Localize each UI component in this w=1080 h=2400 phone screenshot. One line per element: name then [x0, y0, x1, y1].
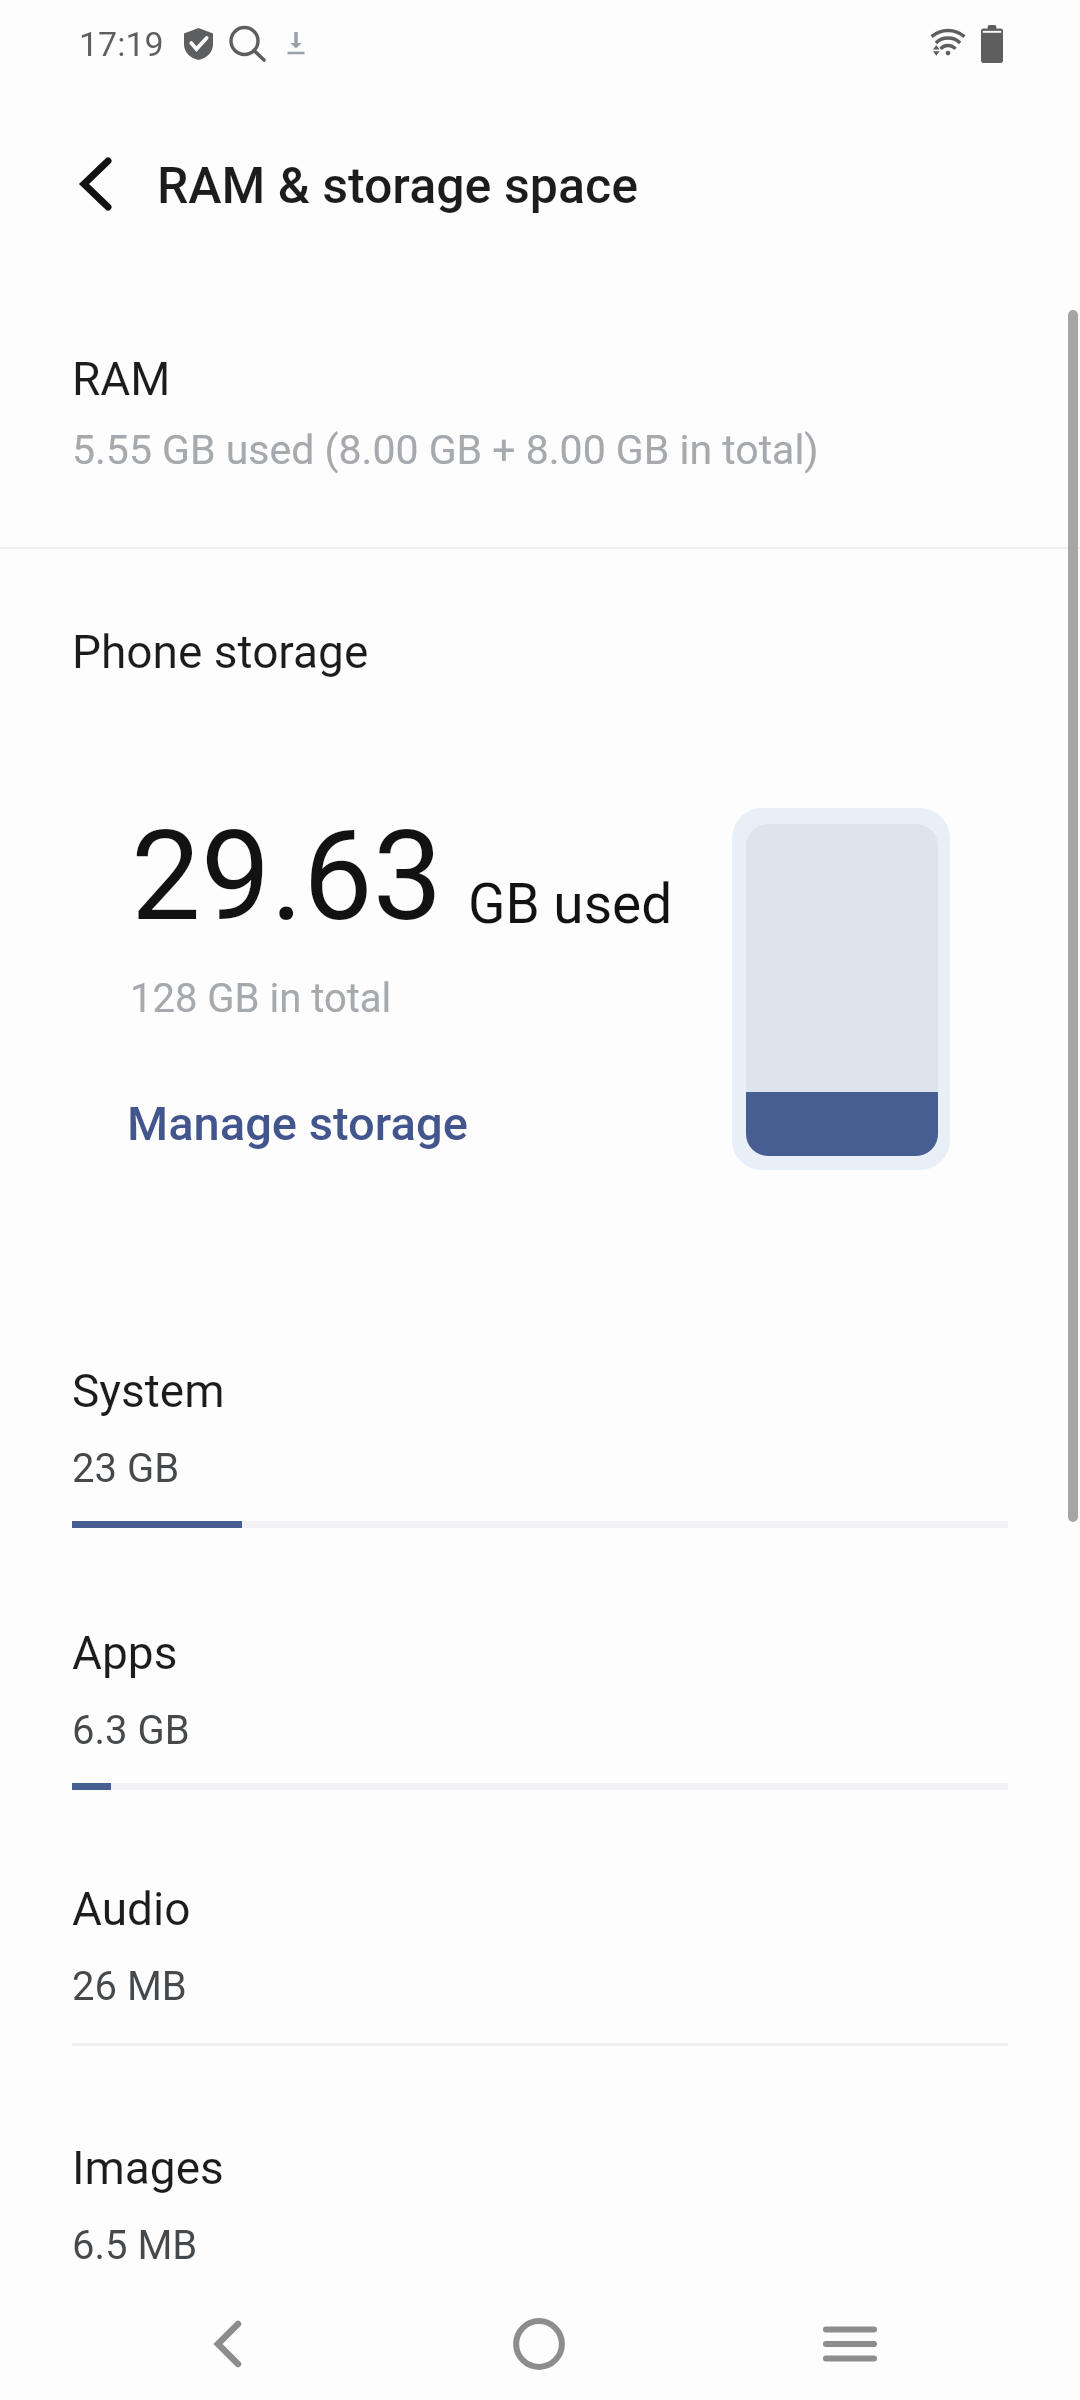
button[interactable]: Back — [54, 142, 138, 226]
button[interactable]: Apps — [0, 1622, 1080, 1822]
button[interactable]: Recent apps — [780, 2281, 920, 2400]
staticText: Manage storage — [127, 1096, 468, 1151]
staticText: RAM & storage space — [157, 157, 638, 216]
staticText: 17:19 — [79, 24, 164, 64]
staticText: 26 MB — [72, 1963, 187, 2010]
staticText: 128 GB in total — [130, 975, 392, 1022]
button[interactable]: Back — [158, 2281, 298, 2400]
staticText: 6.3 GB — [72, 1707, 190, 1754]
staticText: GB used — [468, 872, 673, 936]
staticText: 23 GB — [72, 1445, 180, 1492]
button[interactable]: Images — [0, 2137, 1080, 2267]
staticText: Apps — [72, 1626, 178, 1680]
staticText: 5.55 GB used (8.00 GB + 8.00 GB in total… — [72, 426, 819, 474]
staticText: Phone storage — [72, 625, 369, 679]
staticText: RAM — [72, 352, 171, 406]
staticText: Audio — [72, 1882, 191, 1936]
staticText: Images — [72, 2141, 224, 2195]
staticText: System — [72, 1364, 225, 1418]
button[interactable]: RAM — [0, 300, 1080, 547]
button[interactable]: Manage storage — [127, 1096, 468, 1151]
staticText: 6.5 MB — [72, 2222, 198, 2269]
button[interactable]: Home — [469, 2281, 609, 2400]
staticText: 29.63 — [131, 804, 443, 949]
button[interactable]: Audio — [0, 1878, 1080, 2028]
button[interactable]: System — [0, 1360, 1080, 1560]
